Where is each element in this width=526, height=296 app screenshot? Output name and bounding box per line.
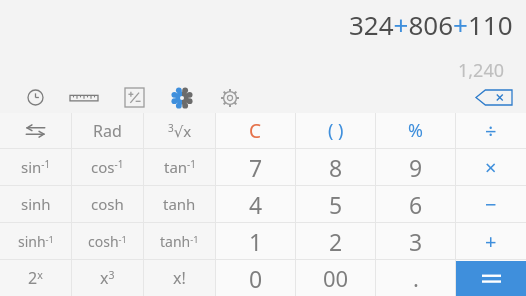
button[interactable]: x! xyxy=(144,260,215,296)
button[interactable]: History xyxy=(12,82,58,113)
button[interactable]: % xyxy=(376,113,455,148)
staticText: 3 xyxy=(409,226,423,257)
staticText: + xyxy=(485,228,497,255)
button[interactable]: 00 xyxy=(296,260,375,296)
staticText: × xyxy=(485,154,497,181)
button[interactable]: 6 xyxy=(376,186,455,222)
staticText: x3 xyxy=(100,267,115,289)
staticText: 9 xyxy=(409,152,423,183)
button[interactable]: 4 xyxy=(216,186,295,222)
button[interactable]: sin-1 xyxy=(0,149,71,185)
staticText: Rad xyxy=(93,120,122,142)
staticText: tanh xyxy=(163,194,196,214)
button[interactable]: cosh-1 xyxy=(72,223,143,259)
staticText: 2 xyxy=(329,226,343,257)
staticText: 6 xyxy=(409,189,423,220)
staticText: cosh xyxy=(91,194,124,214)
button[interactable]: 2 xyxy=(296,223,375,259)
staticText: % xyxy=(408,118,423,143)
staticText: ÷ xyxy=(485,117,497,144)
button[interactable]: Unit converter xyxy=(58,82,110,113)
button[interactable]: Backspace xyxy=(462,82,526,113)
button[interactable]: tanh-1 xyxy=(144,223,215,259)
button[interactable]: 3√x xyxy=(144,113,215,148)
button[interactable] xyxy=(0,113,71,148)
staticText: cos-1 xyxy=(91,157,124,177)
button[interactable]: Theme xyxy=(158,82,206,113)
button[interactable]: tan-1 xyxy=(144,149,215,185)
button[interactable]: 5 xyxy=(296,186,375,222)
button[interactable]: − xyxy=(456,186,526,222)
button[interactable]: x3 xyxy=(72,260,143,296)
staticText: 0 xyxy=(249,263,263,294)
staticText: − xyxy=(485,191,497,218)
staticText: tan-1 xyxy=(164,157,196,177)
button[interactable]: 9 xyxy=(376,149,455,185)
staticText: . xyxy=(413,263,419,293)
button[interactable]: 2x xyxy=(0,260,71,296)
button[interactable]: . xyxy=(376,260,455,296)
button[interactable]: ÷ xyxy=(456,113,526,148)
button[interactable]: 3 xyxy=(376,223,455,259)
staticText: 3√x xyxy=(168,121,192,141)
staticText: 1,240 xyxy=(458,58,505,82)
staticText: C xyxy=(249,118,262,144)
staticText: 7 xyxy=(249,152,263,183)
staticText: 1 xyxy=(249,226,263,257)
button[interactable]: tanh xyxy=(144,186,215,222)
button[interactable]: Settings xyxy=(206,82,254,113)
button[interactable]: Rad xyxy=(72,113,143,148)
button[interactable]: ( ) xyxy=(296,113,375,148)
staticText: 8 xyxy=(329,152,343,183)
staticText: 324+806+110 xyxy=(349,7,513,42)
staticText: tanh-1 xyxy=(160,232,199,251)
staticText: x! xyxy=(173,267,186,289)
staticText: ( ) xyxy=(328,118,344,143)
staticText: sin-1 xyxy=(21,157,51,177)
button[interactable]: sinh-1 xyxy=(0,223,71,259)
button[interactable]: Equals xyxy=(456,261,526,296)
button[interactable]: C xyxy=(216,113,295,148)
staticText: sinh xyxy=(21,194,51,214)
button[interactable]: Plus minus xyxy=(110,82,158,113)
staticText: 4 xyxy=(249,189,263,220)
button[interactable]: 1 xyxy=(216,223,295,259)
button[interactable]: × xyxy=(456,149,526,185)
staticText: cosh-1 xyxy=(88,232,127,251)
staticText: sinh-1 xyxy=(18,232,54,251)
button[interactable]: cos-1 xyxy=(72,149,143,185)
button[interactable]: 0 xyxy=(216,260,295,296)
button[interactable]: sinh xyxy=(0,186,71,222)
button[interactable]: 8 xyxy=(296,149,375,185)
button[interactable]: cosh xyxy=(72,186,143,222)
button[interactable]: + xyxy=(456,223,526,259)
staticText: 2x xyxy=(28,267,43,289)
staticText: 00 xyxy=(323,263,349,293)
button[interactable]: 7 xyxy=(216,149,295,185)
staticText: 5 xyxy=(329,189,343,220)
